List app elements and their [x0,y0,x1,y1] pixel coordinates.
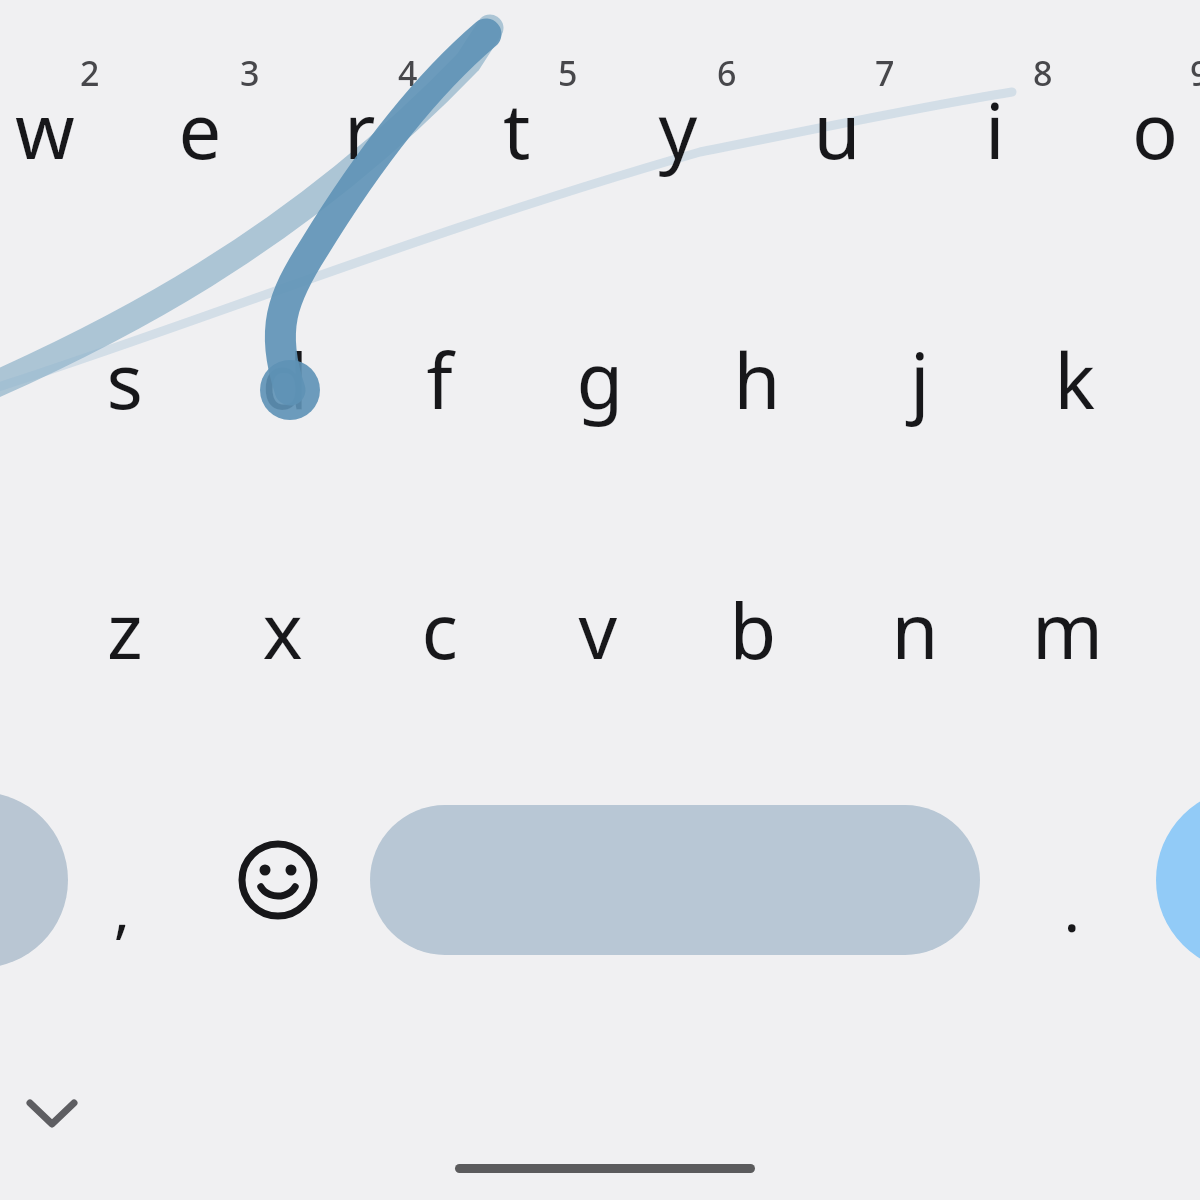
button[interactable]: Shift [0,790,70,970]
button[interactable]: t [447,60,587,245]
button[interactable]: f [370,310,510,495]
button[interactable]: Space [370,805,980,955]
button[interactable]: n [845,560,985,745]
button[interactable]: Period [1010,860,1140,1000]
button[interactable]: k [1005,310,1145,495]
button[interactable]: o [1085,60,1200,245]
button[interactable]: e [130,60,270,245]
button[interactable]: s [55,310,195,495]
button[interactable]: Emoji [205,805,355,955]
button[interactable]: Hide keyboard [5,1080,100,1150]
button[interactable]: Enter [1155,790,1200,970]
button[interactable]: w [0,60,115,245]
button[interactable]: b [683,560,823,745]
button[interactable]: d [215,310,355,495]
button[interactable]: m [998,560,1138,745]
button[interactable]: u [767,60,907,245]
button[interactable]: x [213,560,353,745]
button[interactable]: Comma [55,860,185,1000]
button[interactable]: r [290,60,430,245]
button[interactable]: c [370,560,510,745]
button[interactable]: h [687,310,827,495]
button[interactable]: i [925,60,1065,245]
button[interactable]: v [528,560,668,745]
button[interactable]: z [55,560,195,745]
button[interactable]: y [608,60,748,245]
button[interactable]: g [530,310,670,495]
button[interactable]: j [850,310,990,495]
